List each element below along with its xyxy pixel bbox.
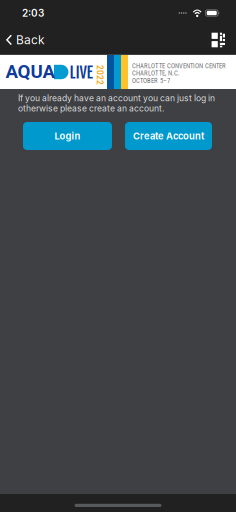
staticText: CHARLOTTE, N.C. — [132, 69, 180, 77]
staticText: LIVE — [69, 62, 92, 82]
button[interactable]: Create Account — [125, 122, 212, 150]
button[interactable]: Back — [0, 26, 55, 54]
button[interactable]: Scan QR code — [202, 26, 236, 54]
staticText: AQUA — [5, 61, 55, 82]
staticText: 2:03 — [22, 7, 44, 19]
staticText: CHARLOTTE CONVENTION CENTER — [132, 62, 226, 70]
button[interactable]: Login — [23, 122, 112, 150]
staticText: If you already have an account you can j… — [18, 93, 215, 114]
staticText: Login — [54, 130, 80, 142]
staticText: Back — [16, 33, 45, 47]
staticText: 2022 — [89, 70, 109, 80]
staticText: Create Account — [133, 130, 204, 142]
staticText: OCTOBER 5–7 — [132, 77, 170, 85]
